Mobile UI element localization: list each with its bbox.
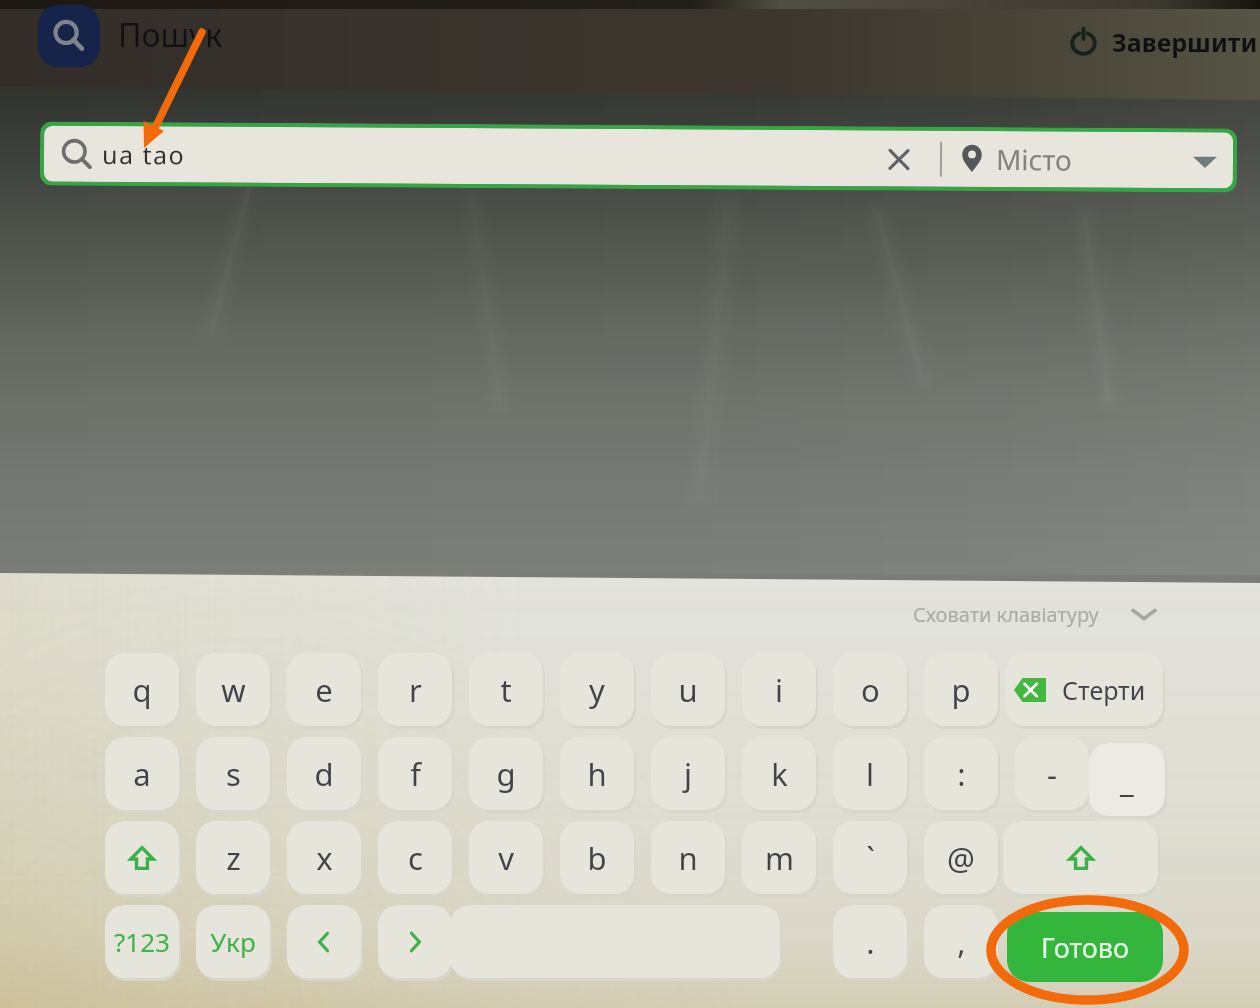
button[interactable]: Готово xyxy=(1007,912,1163,982)
button[interactable]: ?123 xyxy=(105,905,179,978)
button[interactable]: r xyxy=(378,653,452,726)
other: Shift xyxy=(1068,845,1094,871)
staticText: v xyxy=(498,837,514,879)
button[interactable]: Clear xyxy=(886,146,912,172)
other: Shift xyxy=(129,845,155,871)
staticText: Готово xyxy=(1041,929,1130,966)
button[interactable]: t xyxy=(469,653,543,726)
staticText: n xyxy=(678,837,698,879)
button[interactable]: w xyxy=(196,653,270,726)
staticText: k xyxy=(771,753,788,795)
button[interactable]: n xyxy=(651,821,725,894)
staticText: m xyxy=(765,837,794,879)
button[interactable]: h xyxy=(560,737,634,810)
staticText: o xyxy=(861,669,880,711)
button[interactable]: , xyxy=(924,905,998,978)
staticText: Завершити xyxy=(1112,25,1258,59)
staticText: j xyxy=(684,753,692,795)
staticText: b xyxy=(587,837,607,879)
staticText: t xyxy=(500,669,512,711)
button[interactable]: Finish xyxy=(1069,15,1258,69)
staticText: w xyxy=(221,669,246,711)
staticText: ?123 xyxy=(114,924,170,959)
other: Hide keyboard xyxy=(1131,601,1157,627)
staticText: ` xyxy=(866,837,875,879)
button[interactable]: Укр xyxy=(196,905,270,978)
button[interactable]: z xyxy=(196,821,270,894)
staticText: y xyxy=(589,669,605,711)
staticText: Пошук xyxy=(118,13,223,57)
button[interactable]: x xyxy=(287,821,361,894)
staticText: _ xyxy=(1120,759,1134,801)
staticText: i xyxy=(775,669,783,711)
staticText: r xyxy=(409,669,422,711)
other: City xyxy=(957,143,987,173)
button[interactable]: q xyxy=(105,653,179,726)
button[interactable]: Expand xyxy=(1190,146,1220,176)
button[interactable]: p xyxy=(924,653,998,726)
staticText: , xyxy=(957,921,966,963)
other: Finish xyxy=(1069,28,1098,57)
staticText: c xyxy=(408,837,423,879)
staticText: h xyxy=(587,753,607,795)
button[interactable]: i xyxy=(742,653,816,726)
button[interactable]: m xyxy=(742,821,816,894)
staticText: Укр xyxy=(210,924,256,959)
button[interactable]: g xyxy=(469,737,543,810)
button[interactable]: v xyxy=(469,821,543,894)
button[interactable]: Search xyxy=(38,5,100,67)
staticText: u xyxy=(678,669,698,711)
button[interactable]: ua tao xyxy=(44,126,1233,188)
staticText: - xyxy=(1047,753,1057,795)
button[interactable]: - xyxy=(1015,737,1089,810)
button[interactable]: s xyxy=(196,737,270,810)
button[interactable]: : xyxy=(924,737,998,810)
staticText: z xyxy=(226,837,241,879)
button[interactable]: l xyxy=(833,737,907,810)
button[interactable]: Previous xyxy=(287,905,361,978)
button[interactable]: _ xyxy=(1089,743,1165,816)
other: Next xyxy=(404,931,426,953)
button[interactable]: d xyxy=(287,737,361,810)
staticText: x xyxy=(316,837,333,879)
staticText: g xyxy=(496,753,516,795)
button[interactable]: Next xyxy=(378,905,452,978)
staticText: Сховати клавіатуру xyxy=(913,601,1099,628)
staticText: q xyxy=(132,669,152,711)
staticText: ua tao xyxy=(102,137,186,171)
staticText: f xyxy=(410,753,421,795)
other: Previous xyxy=(313,931,335,953)
button[interactable]: f xyxy=(378,737,452,810)
button[interactable]: u xyxy=(651,653,725,726)
button[interactable]: y xyxy=(560,653,634,726)
button[interactable]: k xyxy=(742,737,816,810)
button[interactable]: c xyxy=(378,821,452,894)
staticText: p xyxy=(951,669,971,711)
staticText: @ xyxy=(947,837,975,879)
button[interactable]: o xyxy=(833,653,907,726)
other: Backspace xyxy=(1014,678,1046,702)
staticText: Стерти xyxy=(1062,673,1146,707)
button[interactable]: Backspace xyxy=(1005,653,1163,726)
button[interactable]: Shift xyxy=(1003,821,1158,894)
staticText: d xyxy=(314,753,334,795)
staticText: l xyxy=(866,753,874,795)
button[interactable]: j xyxy=(651,737,725,810)
staticText: . xyxy=(866,921,875,963)
button[interactable]: @ xyxy=(924,821,998,894)
staticText: : xyxy=(957,753,966,795)
button[interactable]: . xyxy=(833,905,907,978)
staticText: e xyxy=(315,669,333,711)
button[interactable]: Shift xyxy=(105,821,179,894)
button[interactable]: a xyxy=(105,737,179,810)
staticText: s xyxy=(226,753,241,795)
staticText: Місто xyxy=(996,140,1072,178)
button[interactable]: ` xyxy=(833,821,907,894)
staticText: a xyxy=(133,753,151,795)
button[interactable]: Сховати клавіатуру xyxy=(913,599,1157,629)
button[interactable]: b xyxy=(560,821,634,894)
button[interactable]: e xyxy=(287,653,361,726)
